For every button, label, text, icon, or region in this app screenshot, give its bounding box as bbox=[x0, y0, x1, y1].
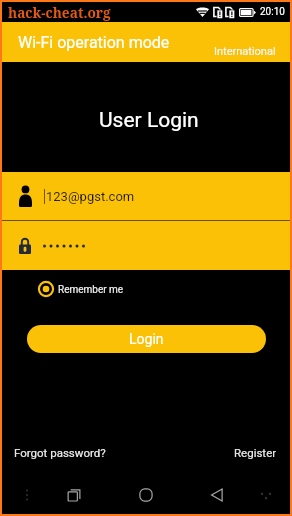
staticText: Remember me bbox=[58, 284, 124, 296]
button[interactable]: 123@pgst.com bbox=[2, 172, 290, 221]
button[interactable]: Home bbox=[132, 481, 160, 509]
staticText: User Login bbox=[99, 108, 199, 133]
staticText: International bbox=[214, 45, 276, 58]
button[interactable]: Login bbox=[27, 325, 266, 353]
button[interactable]: Register bbox=[234, 446, 277, 459]
staticText: 123@pgst.com bbox=[46, 189, 135, 204]
button[interactable]: Remember me bbox=[37, 278, 124, 300]
button[interactable]: Forgot password? bbox=[14, 446, 106, 459]
button[interactable]: Recent apps bbox=[60, 481, 88, 509]
button[interactable]: Back bbox=[203, 481, 231, 509]
button[interactable]: Menu bbox=[13, 481, 41, 509]
button[interactable]: More options bbox=[252, 481, 280, 509]
staticText: Wi-Fi operation mode bbox=[18, 33, 170, 52]
staticText: 20:10 bbox=[260, 6, 285, 18]
button[interactable] bbox=[2, 221, 290, 270]
staticText: hack-cheat.org bbox=[8, 3, 111, 22]
staticText: Login bbox=[129, 331, 164, 347]
